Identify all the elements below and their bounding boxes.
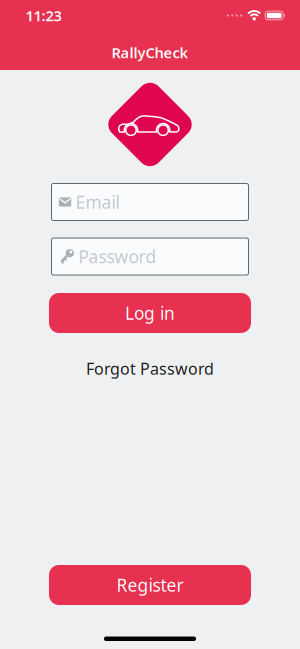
staticText: RallyCheck	[111, 43, 188, 62]
staticText: 11:23	[25, 6, 61, 25]
button[interactable]: Register	[49, 565, 251, 605]
button[interactable]: Email	[51, 183, 248, 220]
button[interactable]: Password	[51, 238, 248, 275]
staticText: Password	[78, 245, 156, 268]
staticText: Register	[116, 573, 183, 596]
button[interactable]: Forgot Password	[86, 358, 214, 379]
staticText: Forgot Password	[86, 358, 214, 379]
staticText: Log in	[125, 301, 175, 324]
button[interactable]: Log in	[49, 293, 251, 333]
staticText: Email	[75, 190, 119, 213]
